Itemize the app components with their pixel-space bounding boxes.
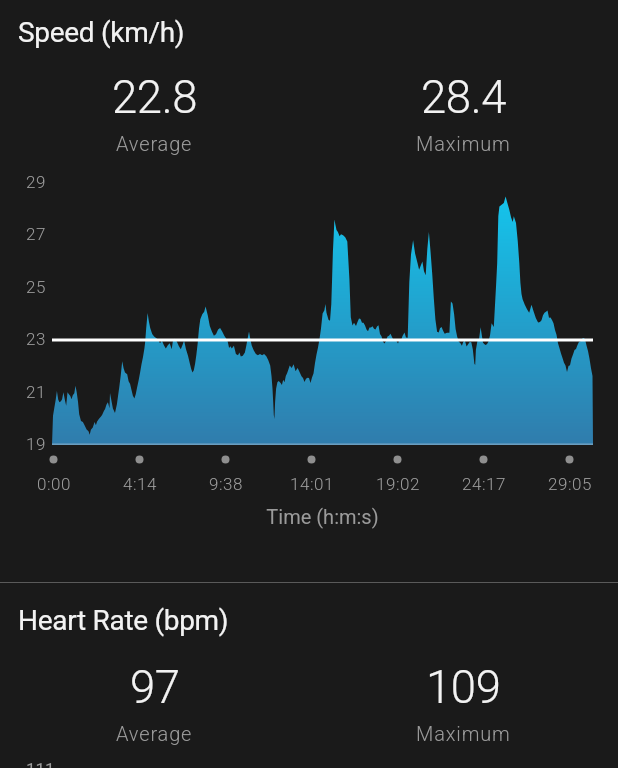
staticText: Heart Rate (bpm) xyxy=(18,604,229,637)
staticText: 9:38 xyxy=(209,474,243,494)
button[interactable]: 97 xyxy=(0,661,309,745)
staticText: 19:02 xyxy=(376,474,420,494)
staticText: 22.8 xyxy=(112,71,197,124)
staticText: 0:00 xyxy=(37,474,71,494)
button[interactable]: 28.4 xyxy=(309,71,618,155)
staticText: Maximum xyxy=(416,722,511,745)
button[interactable]: Heart Rate (bpm) xyxy=(0,600,618,641)
staticText: 29:05 xyxy=(548,474,592,494)
staticText: Time (h:m:s) xyxy=(266,505,379,528)
staticText: 23 xyxy=(26,329,46,349)
staticText: 25 xyxy=(26,277,46,297)
staticText: Average xyxy=(116,722,193,745)
staticText: Maximum xyxy=(416,132,511,155)
staticText: Average xyxy=(116,132,193,155)
staticText: Speed (km/h) xyxy=(18,16,185,49)
staticText: 111 xyxy=(26,759,55,768)
button[interactable]: 22.8 xyxy=(0,71,309,155)
button[interactable]: Speed (km/h) xyxy=(0,12,618,53)
staticText: 27 xyxy=(26,224,46,244)
staticText: 4:14 xyxy=(123,474,157,494)
button[interactable]: 109 xyxy=(309,661,618,745)
staticText: 29 xyxy=(26,172,46,192)
staticText: 19 xyxy=(26,434,46,454)
staticText: 28.4 xyxy=(421,71,506,124)
staticText: 109 xyxy=(426,661,501,714)
staticText: 14:01 xyxy=(290,474,334,494)
staticText: 21 xyxy=(26,382,46,402)
staticText: 97 xyxy=(130,661,180,714)
staticText: 24:17 xyxy=(462,474,506,494)
button[interactable]: Speed over time chart xyxy=(0,165,618,465)
